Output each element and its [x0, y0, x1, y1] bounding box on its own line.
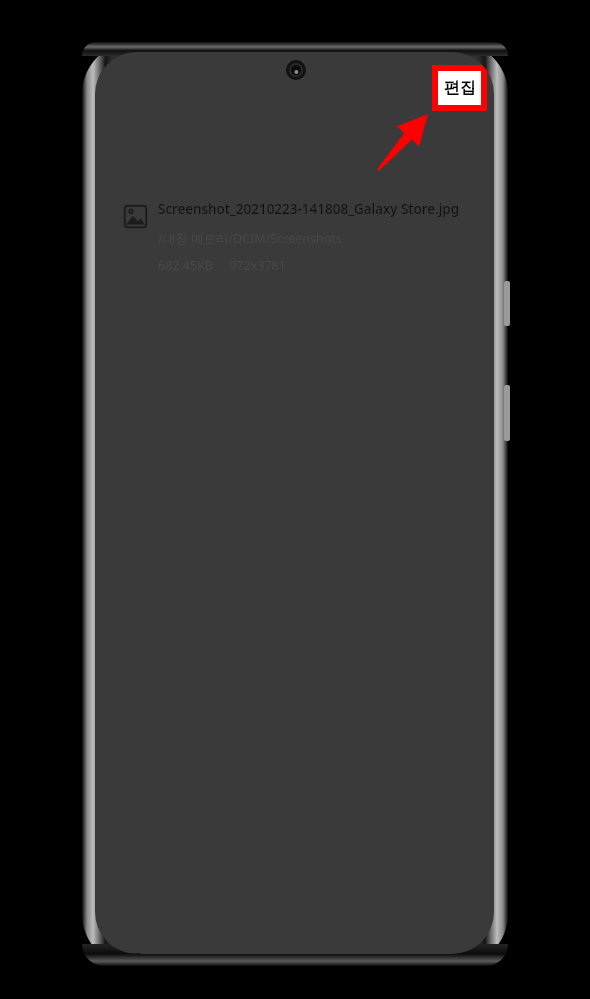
- button[interactable]: Screenshot_20210223-141808_Galaxy Store.…: [123, 200, 468, 295]
- staticText: 682.45KB 972x3781: [158, 257, 286, 274]
- button[interactable]: 편집: [432, 65, 487, 111]
- staticText: /내장 메모리/DCIM/Screenshots: [158, 230, 342, 247]
- staticText: Screenshot_20210223-141808_Galaxy Store.…: [158, 200, 460, 218]
- other: Power button: [504, 385, 510, 441]
- other: Volume button: [504, 281, 510, 326]
- staticText: 편집: [444, 78, 476, 98]
